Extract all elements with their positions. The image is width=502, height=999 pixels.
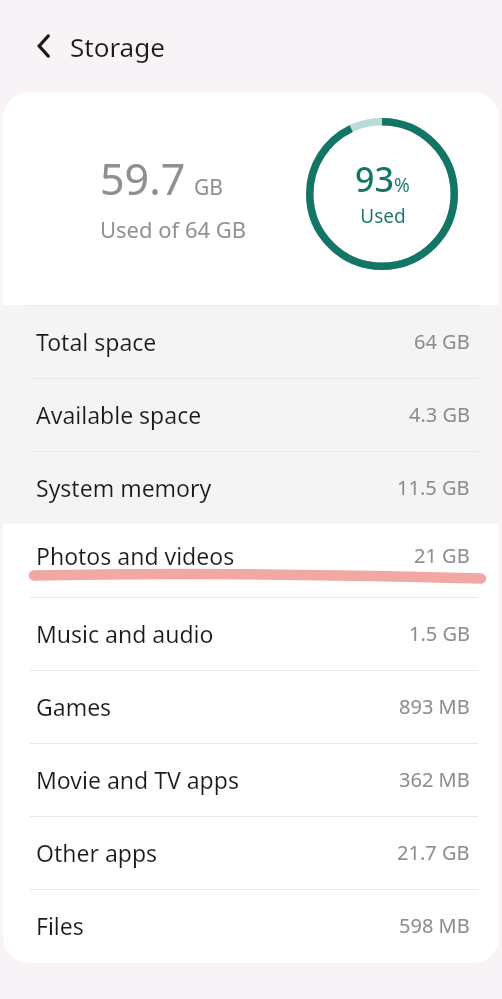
staticText: 93 [355,156,394,202]
button[interactable]: Photos and videos [3,524,499,597]
button[interactable]: Music and audio [3,597,499,670]
button[interactable]: Files [3,889,499,962]
staticText: GB [194,173,223,202]
staticText: 21 GB [414,542,470,569]
staticText: Used [360,203,406,229]
staticText: Available space [36,399,202,430]
staticText: Music and audio [36,618,214,649]
button[interactable]: Total space [3,305,499,378]
staticText: Photos and videos [36,540,235,571]
staticText: 598 MB [399,912,470,939]
staticText: 59.7 [100,149,186,208]
staticText: Used of 64 GB [100,214,247,244]
staticText: 362 MB [399,766,470,793]
button[interactable]: Games [3,670,499,743]
button[interactable]: Available space [3,378,499,451]
staticText: 4.3 GB [409,401,470,428]
button[interactable]: Other apps [3,816,499,889]
staticText: Storage [70,29,165,64]
staticText: Other apps [36,837,158,868]
staticText: Movie and TV apps [36,764,239,795]
staticText: 1.5 GB [409,620,470,647]
staticText: System memory [36,472,212,503]
staticText: 11.5 GB [397,474,470,501]
button[interactable]: Movie and TV apps [3,743,499,816]
staticText: 21.7 GB [397,839,470,866]
staticText: Files [36,910,84,941]
staticText: 893 MB [399,693,470,720]
staticText: Total space [36,326,157,357]
staticText: 64 GB [414,328,470,355]
button[interactable]: Back [22,24,66,68]
staticText: Games [36,691,112,722]
button[interactable]: System memory [3,451,499,524]
staticText: % [394,172,410,198]
